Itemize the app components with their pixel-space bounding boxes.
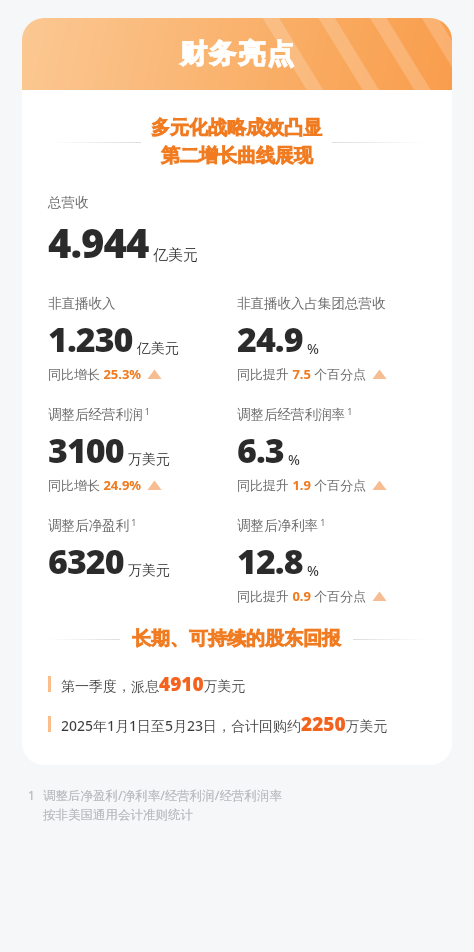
button[interactable]: 总营收 [48,194,198,269]
staticText: 第一季度，派息4910万美元 [61,671,246,697]
button[interactable]: 调整后净利率 1 [237,516,426,605]
button[interactable]: 财务亮点 [22,18,452,90]
staticText: 6.3 [237,427,284,473]
staticText: 24.9 [237,316,303,362]
staticText: 1 [28,787,35,803]
button[interactable]: 2025年1月1日至5月23日，合计回购约2250万美元 [48,711,388,737]
staticText: 同比增长 25.3% [48,365,142,383]
staticText: % [307,339,319,358]
staticText: 1.230 [48,316,133,362]
staticText: 财务亮点 [179,37,295,71]
staticText: 第二增长曲线展现 [161,144,313,168]
staticText: 3100 [48,427,124,473]
staticText: 多元化战略成效凸显 [151,116,322,140]
staticText: 6320 [48,538,124,584]
staticText: 调整后净利率 1 [237,516,326,534]
button[interactable]: 调整后净盈利 1 [48,516,237,605]
staticText: 万美元 [128,451,170,469]
button[interactable]: 非直播收入占集团总营收 [237,295,426,383]
button[interactable]: 非直播收入 [48,295,237,383]
staticText: 调整后经营利润 1 [48,405,150,423]
staticText: 亿美元 [153,246,198,265]
staticText: 2025年1月1日至5月23日，合计回购约2250万美元 [61,711,388,737]
staticText: 同比提升 7.5 个百分点 [237,365,367,383]
staticText: 总营收 [48,194,89,211]
button[interactable]: 调整后经营利润 1 [48,405,237,494]
staticText: 长期、可持续的股东回报 [132,627,341,651]
button[interactable]: 调整后经营利润率 1 [237,405,426,494]
staticText: 同比增长 24.9% [48,476,142,494]
staticText: 同比提升 1.9 个百分点 [237,476,367,494]
staticText: 万美元 [128,562,170,580]
staticText: 4.944 [48,215,149,269]
staticText: 调整后净盈利/净利率/经营利润/经营利润率 [43,787,282,804]
staticText: 非直播收入占集团总营收 [237,295,386,312]
staticText: % [307,561,319,580]
staticText: 亿美元 [137,340,179,358]
staticText: 按非美国通用会计准则统计 [43,807,193,823]
button[interactable]: 第一季度，派息4910万美元 [48,671,246,697]
staticText: 非直播收入 [48,295,116,312]
staticText: 同比提升 0.9 个百分点 [237,587,367,605]
staticText: % [288,450,300,469]
staticText: 12.8 [237,538,303,584]
staticText: 调整后经营利润率 1 [237,405,353,423]
staticText: 调整后净盈利 1 [48,516,137,534]
